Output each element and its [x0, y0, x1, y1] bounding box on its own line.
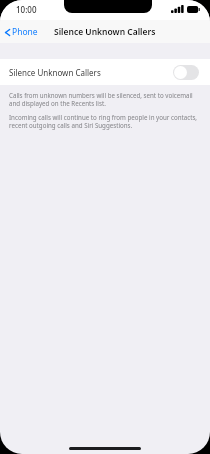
staticText: Incoming calls will continue to ring fro… [9, 113, 200, 129]
staticText: 10:00 [16, 4, 37, 15]
staticText: Phone [12, 26, 38, 38]
button[interactable]: Silence Unknown Callers toggle [173, 65, 199, 80]
staticText: Silence Unknown Callers [54, 26, 156, 38]
button[interactable]: Phone [0, 23, 44, 41]
button[interactable]: Silence Unknown Callers [0, 59, 210, 85]
staticText: Silence Unknown Callers [9, 67, 101, 78]
staticText: Calls from unknown numbers will be silen… [9, 91, 200, 107]
